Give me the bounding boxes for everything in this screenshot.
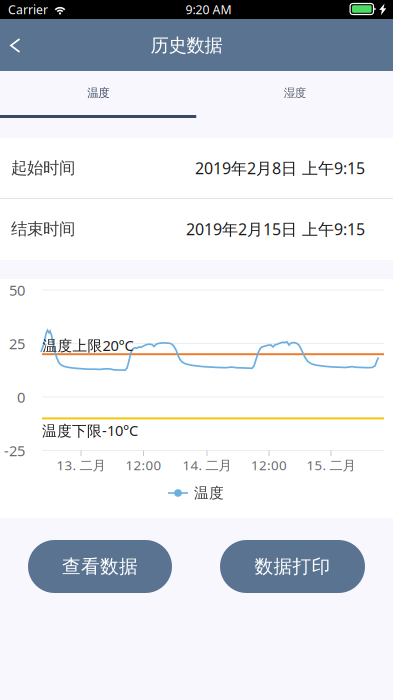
button[interactable]: Back <box>0 19 42 71</box>
button[interactable]: 查看数据 <box>28 540 172 593</box>
button[interactable]: 起始时间 <box>0 138 393 199</box>
button[interactable]: 数据打印 <box>220 540 365 593</box>
staticText: 温度 <box>194 484 224 502</box>
staticText: 温度 <box>87 86 109 100</box>
staticText: 25 <box>9 333 25 353</box>
staticText: 13. 二月 <box>56 456 105 474</box>
staticText: 结束时间 <box>11 219 75 239</box>
staticText: 9:20 AM <box>186 1 232 18</box>
staticText: 12:00 <box>125 456 161 474</box>
button[interactable]: 温度 <box>0 71 196 118</box>
staticText: Carrier <box>8 1 48 18</box>
button[interactable]: 湿度 <box>196 71 393 118</box>
staticText: 数据打印 <box>254 555 330 578</box>
staticText: -25 <box>4 440 25 460</box>
staticText: 12:00 <box>251 456 287 474</box>
staticText: 15. 二月 <box>306 456 355 474</box>
staticText: 查看数据 <box>62 555 138 578</box>
staticText: 温度下限-10°C <box>42 420 138 440</box>
staticText: 2019年2月15日 上午9:15 <box>186 218 365 240</box>
staticText: 0 <box>17 387 25 407</box>
staticText: 起始时间 <box>11 158 75 178</box>
staticText: 50 <box>9 280 25 300</box>
staticText: 温度上限20°C <box>42 335 133 355</box>
staticText: 14. 二月 <box>182 456 231 474</box>
staticText: 2019年2月8日 上午9:15 <box>195 157 365 179</box>
staticText: 历史数据 <box>151 34 223 57</box>
staticText: 湿度 <box>284 86 306 100</box>
button[interactable]: 结束时间 <box>0 199 393 260</box>
